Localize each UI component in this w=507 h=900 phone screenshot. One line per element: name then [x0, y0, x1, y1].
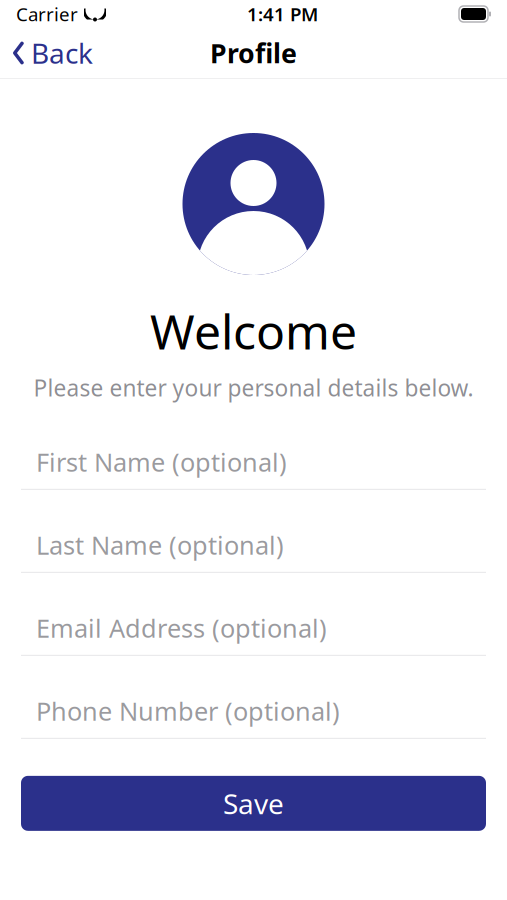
staticText: 1:41 PM — [247, 2, 318, 26]
button[interactable]: Phone Number (optional) — [21, 684, 486, 739]
staticText: Welcome — [150, 299, 357, 363]
staticText: First Name (optional) — [36, 445, 287, 479]
button[interactable]: Last Name (optional) — [21, 518, 486, 573]
staticText: Carrier — [16, 2, 78, 26]
button[interactable]: Back — [0, 28, 105, 78]
staticText: Save — [223, 785, 284, 822]
staticText: Please enter your personal details below… — [33, 373, 473, 403]
button[interactable]: First Name (optional) — [21, 435, 486, 490]
button[interactable]: Save — [21, 776, 486, 831]
button[interactable]: Email Address (optional) — [21, 601, 486, 656]
staticText: Last Name (optional) — [36, 528, 284, 562]
staticText: Profile — [210, 35, 297, 71]
staticText: Email Address (optional) — [36, 611, 327, 645]
staticText: Back — [31, 34, 93, 72]
staticText: Phone Number (optional) — [36, 694, 340, 728]
